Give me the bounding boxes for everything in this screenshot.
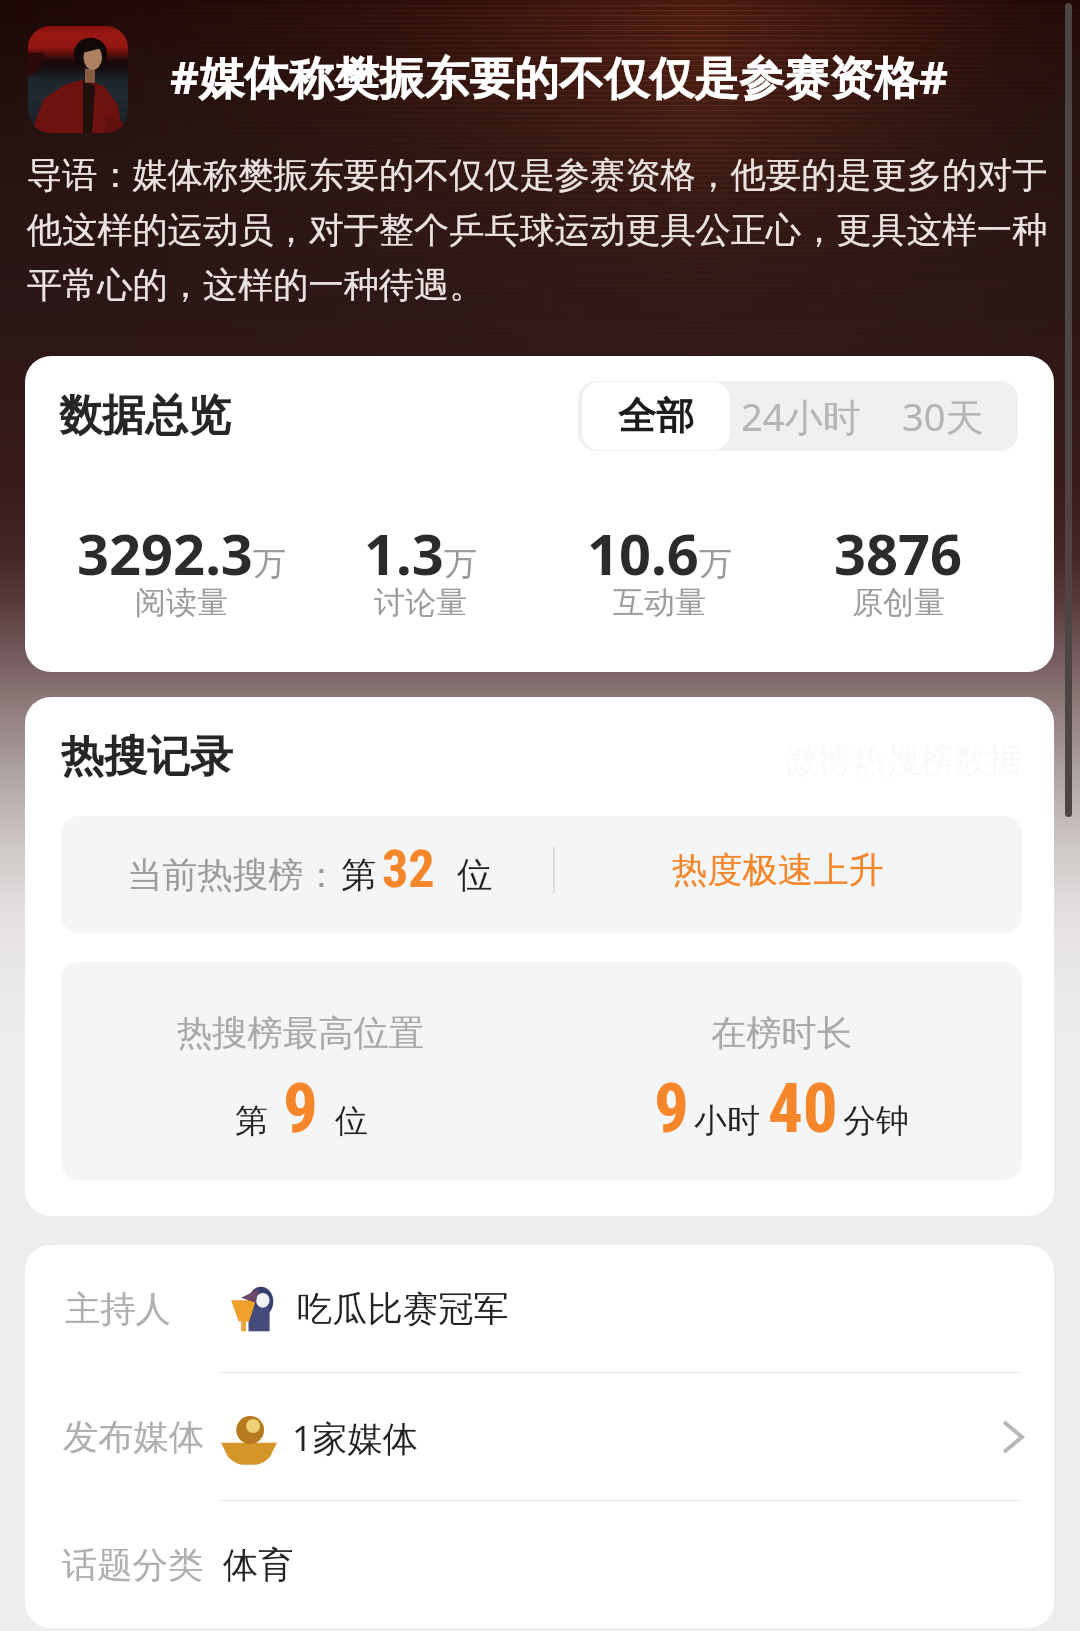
staticText: 10.6 — [587, 515, 699, 591]
staticText: 主持人 — [65, 1287, 171, 1331]
staticText: 30天 — [902, 390, 984, 442]
staticText: 3292.3 — [77, 515, 253, 591]
staticText: 热度极速上升 — [672, 848, 884, 892]
button[interactable]: 30天 — [871, 381, 1015, 451]
staticText: 热搜记录 — [61, 730, 233, 784]
staticText: 话题分类 — [62, 1543, 204, 1587]
staticText: 数据总览 — [59, 389, 231, 443]
staticText: 32 — [382, 839, 435, 900]
staticText: 在榜时长 — [711, 1011, 853, 1055]
staticText: 1家媒体 — [292, 1413, 419, 1461]
button[interactable]: 发布媒体 — [25, 1373, 1054, 1500]
staticText: #媒体称樊振东要的不仅仅是参赛资格# — [170, 46, 949, 107]
staticText: 阅读量 — [135, 583, 228, 622]
staticText: 互动量 — [613, 583, 706, 622]
staticText: 位 — [335, 1100, 368, 1142]
staticText: 40 — [768, 1068, 838, 1149]
staticText: 第 — [235, 1100, 268, 1142]
staticText: 发布媒体 — [63, 1415, 205, 1459]
staticText: 9 — [654, 1068, 689, 1149]
staticText: 当前热搜榜： — [127, 853, 339, 897]
staticText: 原创量 — [852, 583, 945, 622]
staticText: 导语：媒体称樊振东要的不仅仅是参赛资格，他要的是更多的对于他这样的运动员，对于整… — [27, 153, 1064, 308]
staticText: 讨论量 — [374, 583, 467, 622]
staticText: 万 — [444, 543, 477, 585]
staticText: 吃瓜比赛冠军 — [297, 1287, 509, 1331]
staticText: 万 — [253, 543, 286, 585]
other: More — [999, 1415, 1027, 1459]
staticText: 3876 — [834, 515, 963, 591]
button[interactable]: 24小时 — [730, 381, 871, 451]
staticText: 第 — [341, 853, 377, 897]
staticText: 1.3 — [364, 515, 444, 591]
staticText: 体育 — [223, 1543, 294, 1587]
staticText: 9 — [283, 1068, 318, 1149]
button[interactable]: 主持人 — [25, 1245, 1054, 1372]
staticText: 全部 — [618, 392, 694, 440]
button[interactable]: 全部 — [582, 382, 730, 450]
staticText: 24小时 — [741, 390, 861, 442]
staticText: 小时 — [694, 1100, 760, 1142]
staticText: 分钟 — [843, 1100, 909, 1142]
staticText: 热搜榜最高位置 — [177, 1011, 425, 1055]
staticText: 位 — [457, 853, 493, 897]
staticText: 万 — [699, 543, 732, 585]
